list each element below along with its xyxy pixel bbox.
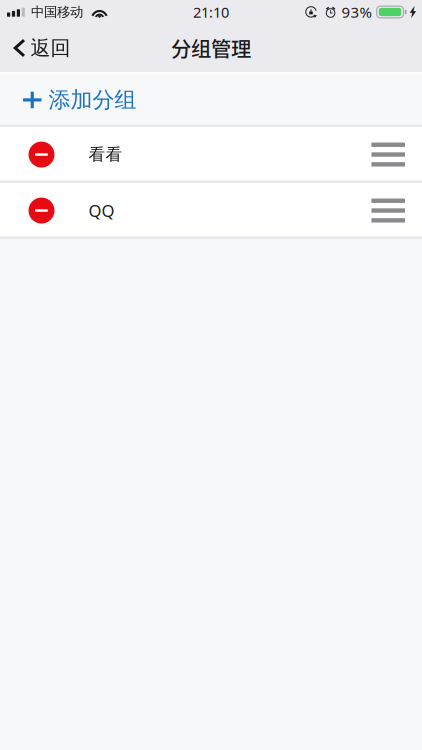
button[interactable]: 返回	[0, 24, 82, 72]
button[interactable]: 删除 QQ	[0, 185, 63, 236]
button[interactable]: 重新排序 看看	[357, 129, 422, 180]
staticText: QQ	[88, 199, 114, 222]
staticText: 添加分组	[48, 86, 136, 114]
staticText: 93%	[341, 2, 371, 22]
button[interactable]: 添加分组	[0, 75, 422, 124]
button[interactable]: 重新排序 QQ	[357, 185, 422, 236]
staticText: 21:10	[193, 2, 229, 22]
staticText: 中国移动	[31, 4, 83, 20]
staticText: 返回	[30, 35, 70, 61]
button[interactable]: 删除 看看	[0, 129, 63, 180]
staticText: 看看	[88, 144, 122, 165]
staticText: 分组管理	[171, 33, 251, 63]
